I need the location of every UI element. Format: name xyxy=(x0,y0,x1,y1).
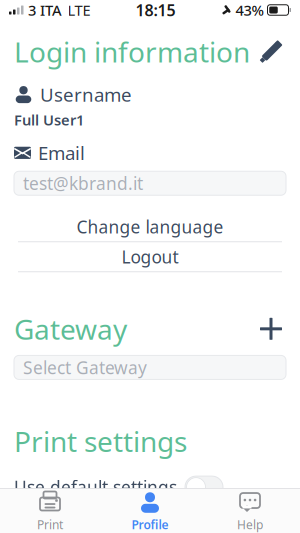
staticText: Login information xyxy=(14,33,250,70)
staticText: Help xyxy=(237,516,263,532)
button[interactable]: Profile xyxy=(100,486,200,533)
staticText: Use default settings xyxy=(14,476,177,499)
staticText: Change settings xyxy=(83,515,216,533)
staticText: Profile xyxy=(131,516,168,532)
staticText: test@kbrand.it xyxy=(23,172,143,195)
staticText: Select Gateway xyxy=(23,356,147,379)
staticText: Username xyxy=(40,82,132,107)
button[interactable]: Use default settings xyxy=(185,476,223,498)
button[interactable]: Help xyxy=(200,486,300,533)
staticText: Print settings xyxy=(14,422,187,460)
button[interactable]: Edit login information xyxy=(256,39,286,65)
staticText: 3 ITA xyxy=(28,0,62,20)
staticText: Print xyxy=(37,516,63,532)
staticText: 43% xyxy=(235,0,263,20)
staticText: Logout xyxy=(121,245,178,268)
staticText: Change language xyxy=(76,215,223,238)
button[interactable]: Change settings xyxy=(0,512,300,533)
button[interactable]: Add gateway xyxy=(256,316,286,342)
button[interactable]: Select Gateway xyxy=(0,355,300,379)
button[interactable]: Change language xyxy=(0,212,300,242)
button[interactable]: Logout xyxy=(0,242,300,272)
staticText: LTE xyxy=(67,0,90,20)
staticText: 18:15 xyxy=(135,0,175,21)
staticText: Full User1 xyxy=(14,110,84,129)
button[interactable]: Print xyxy=(0,486,100,533)
staticText: Gateway xyxy=(14,310,127,347)
staticText: Email xyxy=(38,140,85,165)
